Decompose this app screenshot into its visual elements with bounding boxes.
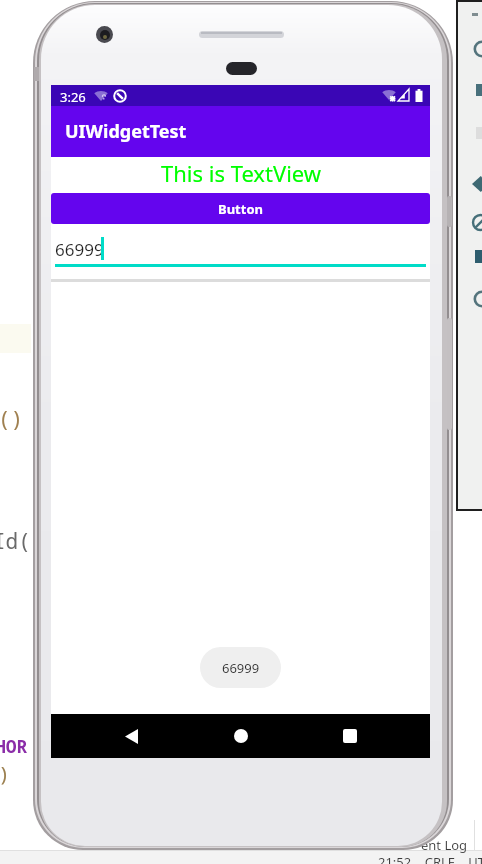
staticText: UIWidgetTest: [65, 119, 187, 144]
staticText: 66999: [55, 238, 104, 261]
staticText: HOR: [0, 734, 28, 759]
staticText: This is TextView: [161, 158, 322, 188]
staticText: 21:52 CRLF UTF: [378, 853, 482, 864]
staticText: 3:26: [60, 88, 86, 106]
button[interactable]: Back: [109, 714, 153, 758]
staticText: (): [0, 405, 24, 434]
button[interactable]: Home: [219, 714, 263, 758]
staticText: Id(: [0, 527, 31, 556]
button[interactable]: Button: [51, 193, 430, 224]
staticText: ent Log: [421, 836, 468, 854]
staticText: 66999: [222, 659, 260, 677]
button[interactable]: Recent apps: [328, 714, 372, 758]
button[interactable]: 66999: [51, 224, 430, 279]
staticText: Button: [218, 200, 263, 218]
staticText: ): [0, 760, 10, 787]
